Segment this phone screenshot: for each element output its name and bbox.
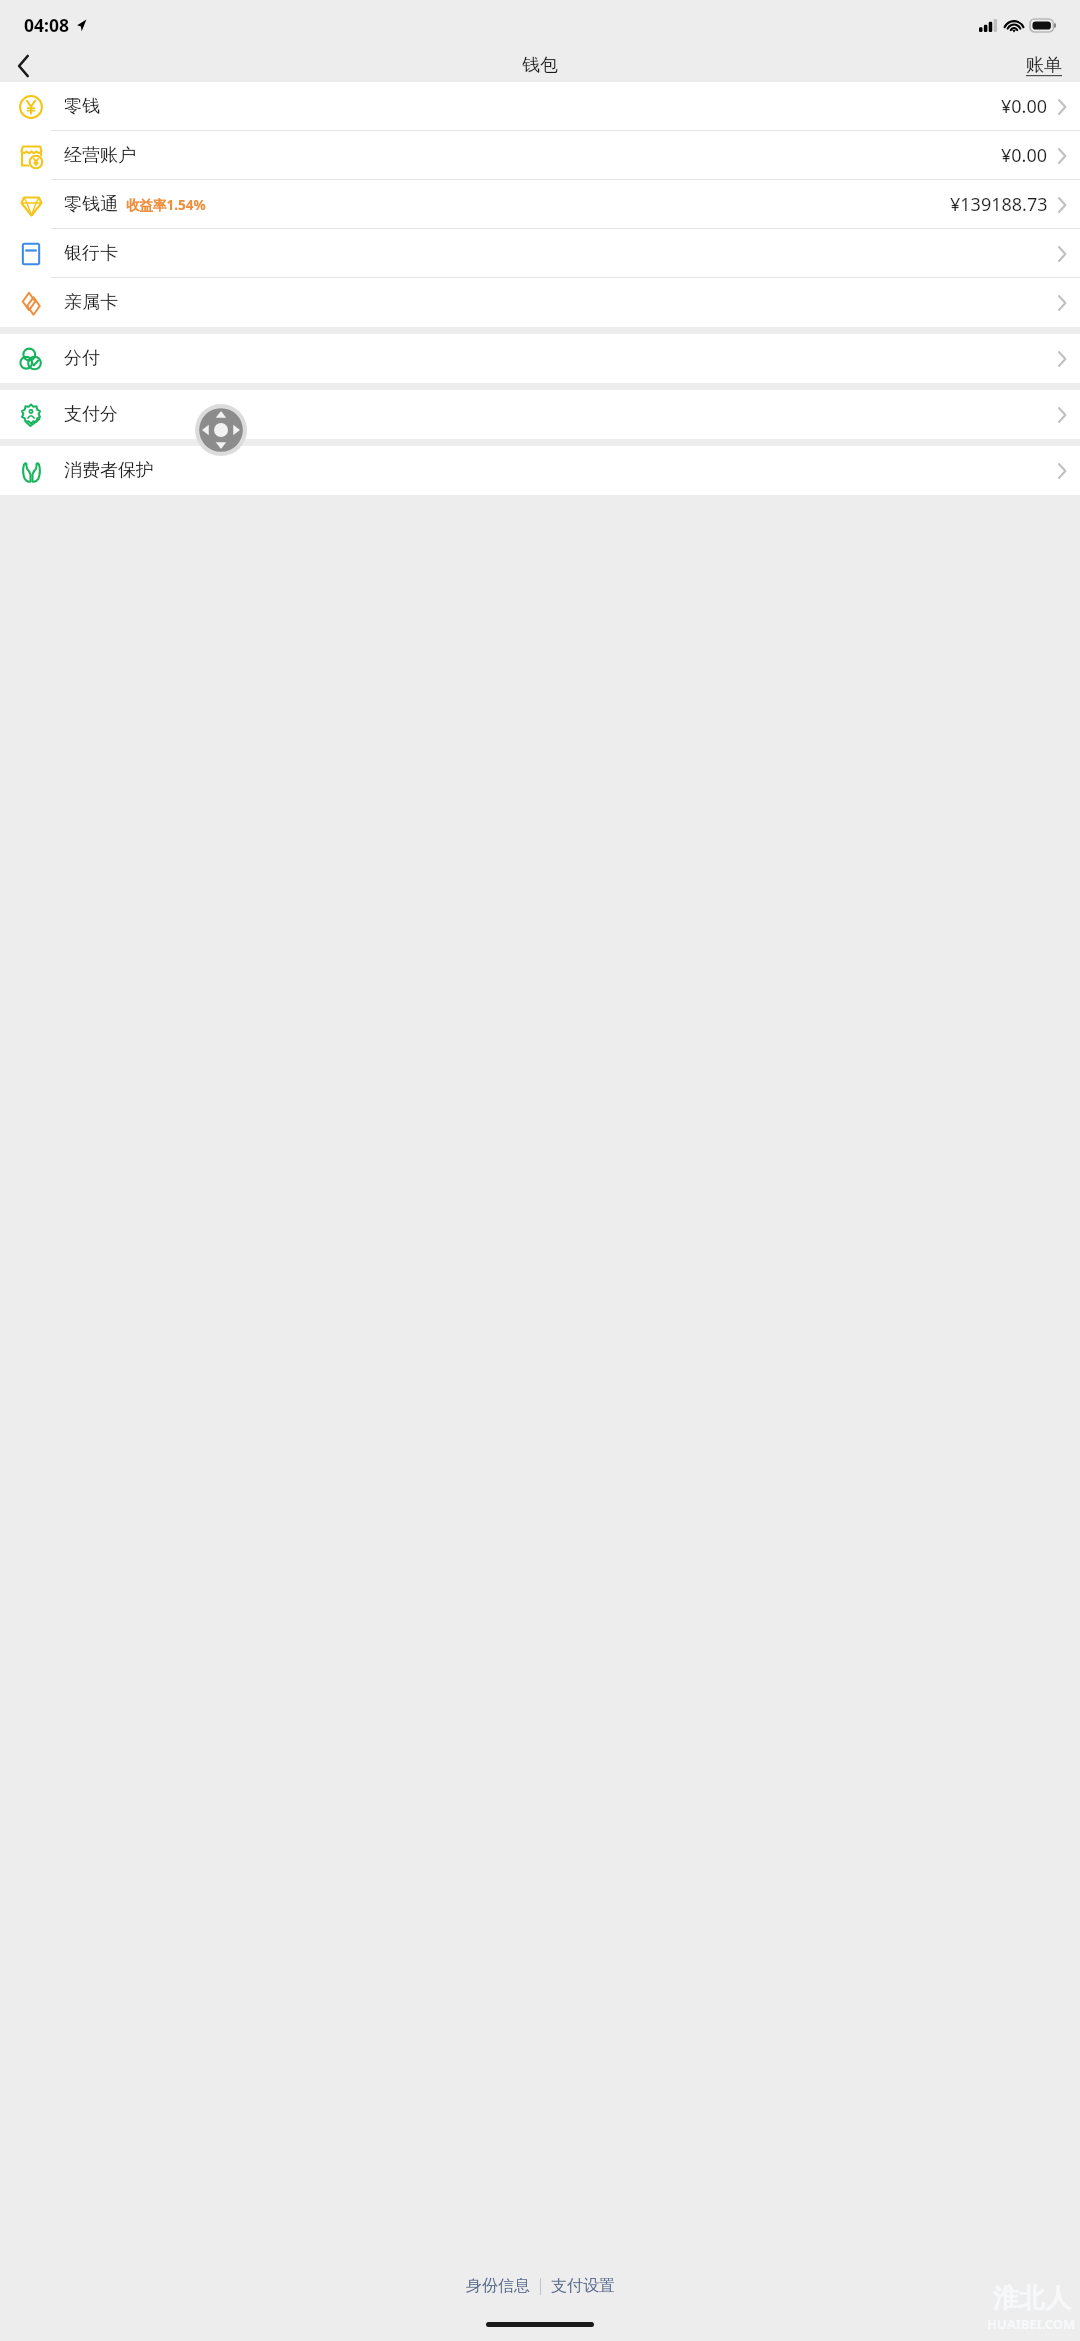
staticText: 04:08 <box>24 13 69 37</box>
staticText: 身份信息 <box>466 2276 530 2296</box>
staticText: 支付分 <box>64 403 118 426</box>
staticText: ¥139188.73 <box>950 192 1048 217</box>
button[interactable]: 经营账户 <box>0 131 1080 180</box>
staticText: 银行卡 <box>64 242 118 265</box>
staticText: 消费者保护 <box>64 459 154 482</box>
staticText: 钱包 <box>522 54 558 77</box>
staticText: ¥0.00 <box>1001 94 1048 119</box>
staticText: HUAIBEI.COM <box>987 2315 1076 2333</box>
staticText: 账单 <box>1026 54 1062 77</box>
button[interactable]: 身份信息 <box>456 2270 540 2302</box>
button[interactable]: 支付设置 <box>541 2270 625 2302</box>
button[interactable]: 消费者保护 <box>0 446 1080 495</box>
staticText: 零钱 <box>64 95 100 118</box>
staticText: 分付 <box>64 347 100 370</box>
staticText: 经营账户 <box>64 144 136 167</box>
button[interactable]: 分付 <box>0 334 1080 383</box>
button[interactable]: Navigation joystick <box>195 404 247 456</box>
button[interactable]: 零钱通 <box>0 180 1080 229</box>
button[interactable]: 账单 <box>1022 51 1066 80</box>
staticText: 收益率1.54% <box>126 196 206 214</box>
button[interactable]: 银行卡 <box>0 229 1080 278</box>
button[interactable]: 亲属卡 <box>0 278 1080 327</box>
staticText: 零钱通 <box>64 193 118 216</box>
button[interactable]: Back <box>0 50 46 81</box>
button[interactable]: 零钱 <box>0 82 1080 131</box>
staticText: 亲属卡 <box>64 291 118 314</box>
staticText: 淮北人 <box>993 2282 1071 2315</box>
staticText: 支付设置 <box>551 2276 615 2296</box>
staticText: ¥0.00 <box>1001 143 1048 168</box>
button[interactable]: 支付分 <box>0 390 1080 439</box>
